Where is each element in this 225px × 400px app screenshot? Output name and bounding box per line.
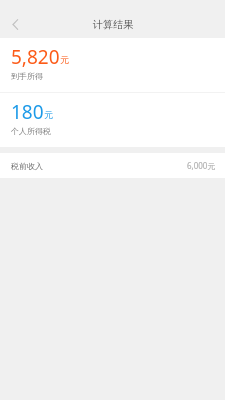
button[interactable]: 税前收入 [0,153,225,178]
staticText: 5,820 [11,44,60,70]
button[interactable]: Back [0,11,30,38]
staticText: 6,000元 [187,160,216,171]
staticText: 180 [11,99,44,125]
staticText: 个人所得税 [11,126,51,136]
staticText: 税前收入 [11,161,43,171]
staticText: 到手所得 [11,71,43,81]
staticText: 元 [44,109,53,120]
staticText: 元 [60,54,69,65]
staticText: 计算结果 [93,18,133,31]
